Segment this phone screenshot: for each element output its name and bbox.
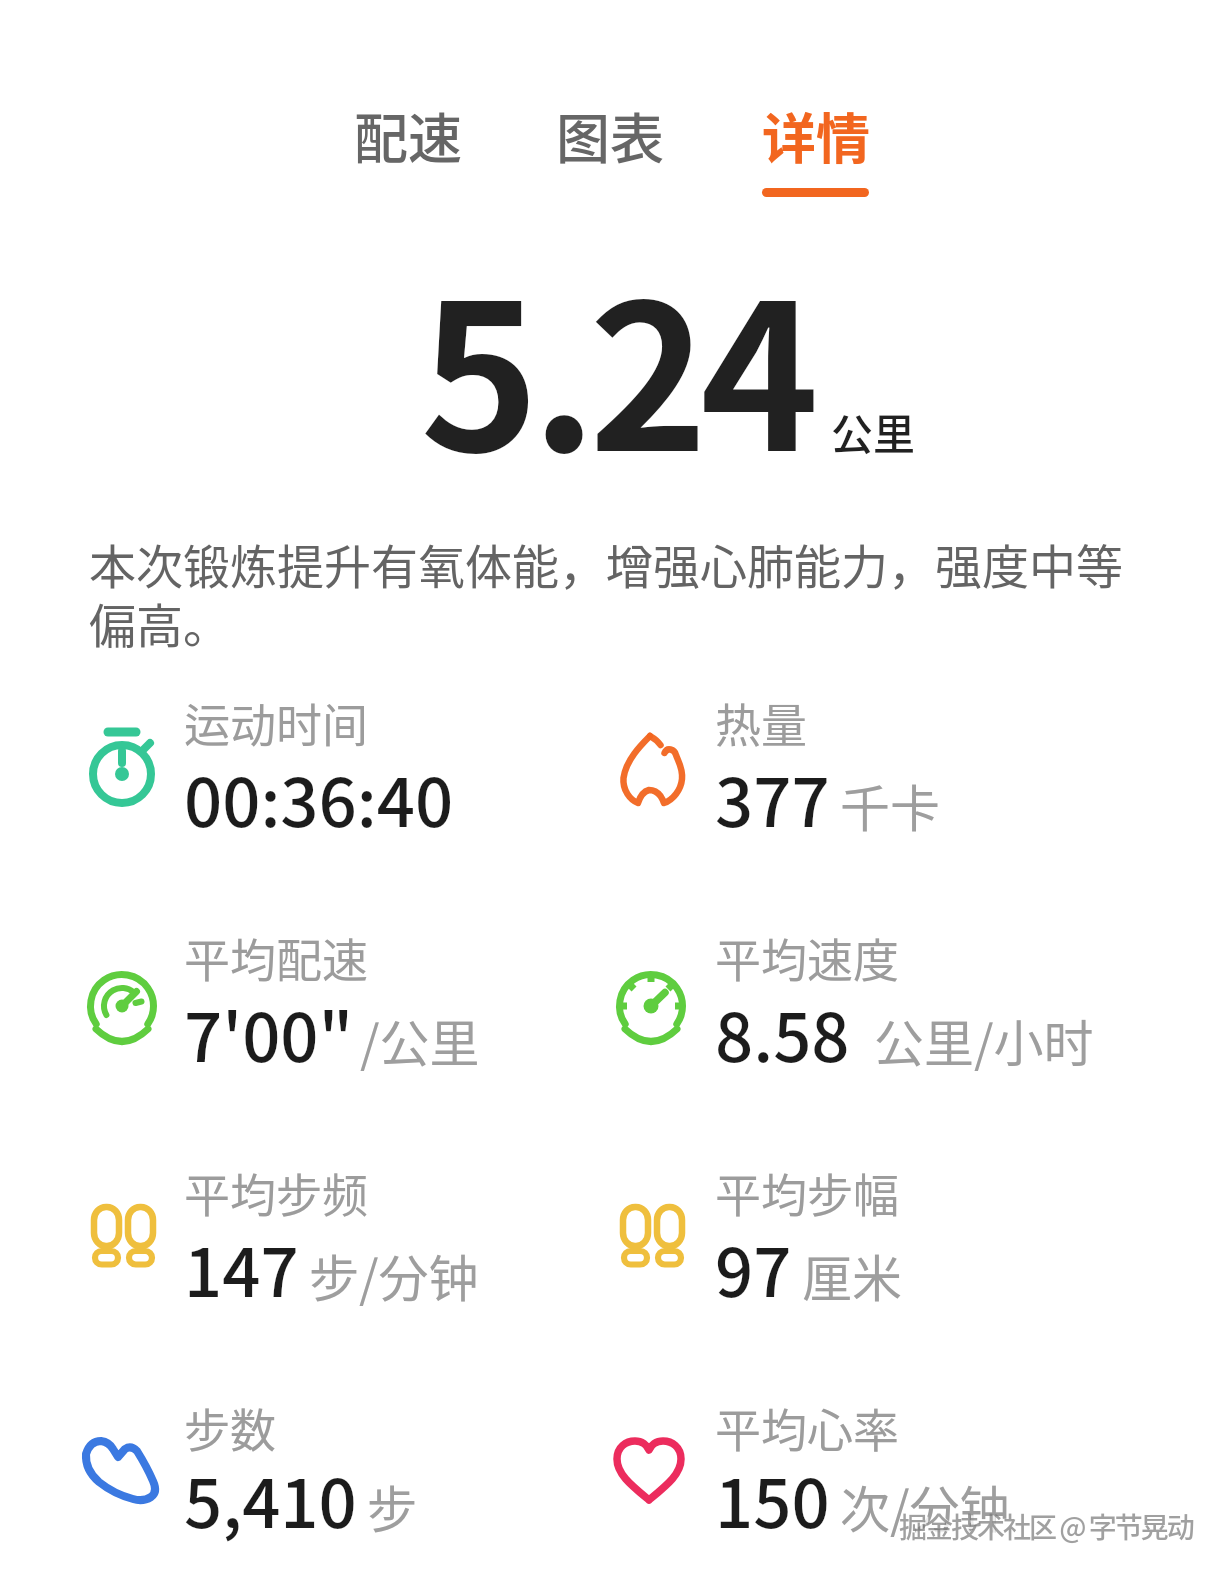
staticText: 5,410	[184, 1450, 357, 1547]
staticText: 厘米	[802, 1239, 902, 1311]
staticText: 5.24	[420, 217, 812, 509]
staticText: 平均心率	[715, 1394, 899, 1461]
staticText: /公里	[360, 1004, 480, 1076]
staticText: 详情	[762, 96, 870, 174]
staticText: 377	[715, 749, 830, 846]
staticText: 掘金技术社区 @ 字节晃动	[902, 1508, 1196, 1549]
staticText: 热量	[715, 689, 807, 756]
staticText: 偏高。	[89, 588, 230, 656]
staticText: 平均步频	[184, 1159, 368, 1226]
staticText: 图表	[556, 96, 664, 174]
staticText: 公里/小时	[874, 1004, 1094, 1076]
staticText: 150	[715, 1450, 830, 1547]
staticText: 97	[715, 1219, 792, 1316]
staticText: 平均配速	[184, 924, 368, 991]
staticText: 配速	[354, 96, 462, 174]
staticText: 本次锻炼提升有氧体能，增强心肺能力，强度中等	[89, 529, 1123, 597]
staticText: 次/分钟	[840, 1470, 1010, 1542]
staticText: 步/分钟	[309, 1239, 479, 1311]
staticText: 公里	[831, 401, 916, 462]
staticText: 千卡	[840, 769, 940, 841]
staticText: 7'00"	[184, 984, 354, 1081]
staticText: 掘金技术社区 @ 字节晃动	[899, 1506, 1193, 1547]
staticText: 147	[184, 1219, 299, 1316]
staticText: 8.58	[715, 984, 850, 1081]
button[interactable]: 配速	[336, 85, 480, 185]
staticText: 平均步幅	[715, 1159, 899, 1226]
staticText: 平均速度	[715, 924, 899, 991]
button[interactable]: 图表	[538, 85, 682, 185]
staticText: 00:36:40	[184, 749, 454, 846]
staticText: 运动时间	[184, 689, 368, 756]
button[interactable]: 详情	[744, 85, 888, 185]
staticText: 步	[367, 1470, 417, 1542]
staticText: 步数	[184, 1394, 276, 1461]
